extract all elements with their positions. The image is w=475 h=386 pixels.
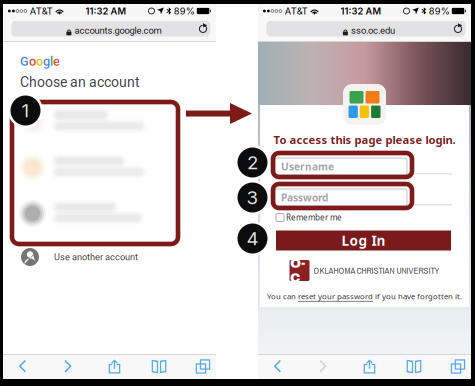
staticText: To access this page please login. (273, 132, 455, 147)
staticText: G (20, 54, 29, 69)
staticText: sso.oc.edu (351, 25, 395, 36)
button[interactable]: Bookmarks (140, 354, 178, 379)
staticText: 89% (174, 5, 195, 17)
staticText: 89% (429, 5, 450, 17)
staticText: 2 (247, 151, 258, 174)
staticText: if you have forgotten it. (373, 291, 462, 301)
staticText: AT&T (30, 5, 53, 17)
button[interactable]: Share (350, 354, 388, 379)
staticText: OC (290, 256, 309, 285)
button[interactable] (3, 148, 216, 194)
button[interactable]: Forward (50, 354, 88, 379)
staticText: e (53, 54, 60, 69)
staticText: OKLAHOMA CHRISTIAN UNIVERSITY (313, 265, 439, 276)
staticText: Username (281, 160, 334, 173)
staticText: o (36, 54, 43, 69)
staticText: Choose an account (20, 74, 140, 90)
button[interactable]: Use another account (3, 244, 216, 270)
staticText: 1 (21, 99, 29, 122)
staticText: 11:32 AM (86, 5, 127, 17)
button[interactable] (3, 102, 216, 148)
staticText: g (43, 54, 50, 69)
button[interactable]: reset your password (298, 291, 373, 301)
button[interactable]: Tabs (184, 354, 222, 379)
staticText: Log In (341, 231, 385, 250)
staticText: accounts.google.com (74, 25, 161, 36)
button[interactable] (3, 194, 216, 240)
staticText: AT&T (285, 5, 308, 17)
button[interactable]: Back (3, 354, 41, 379)
staticText: 3 (246, 186, 258, 209)
button[interactable]: Bookmarks (395, 354, 433, 379)
button[interactable]: Reload page (449, 21, 467, 36)
staticText: Remember me (286, 212, 342, 223)
button[interactable]: Username (275, 158, 407, 175)
staticText: 4 (246, 227, 258, 250)
staticText: 11:32 AM (341, 5, 382, 17)
button[interactable]: Log In (276, 230, 451, 250)
button[interactable]: Tabs (439, 354, 475, 379)
button[interactable]: Back (258, 354, 296, 379)
staticText: l (50, 54, 53, 69)
button[interactable]: Share (95, 354, 133, 379)
button[interactable]: Password (275, 189, 407, 206)
staticText: Use another account (54, 252, 138, 262)
staticText: You can (267, 291, 298, 301)
staticText: Password (281, 191, 328, 204)
button[interactable]: Forward (305, 354, 343, 379)
staticText: o (29, 54, 36, 69)
staticText: reset your password (298, 291, 373, 301)
button[interactable]: Reload page (194, 21, 212, 36)
